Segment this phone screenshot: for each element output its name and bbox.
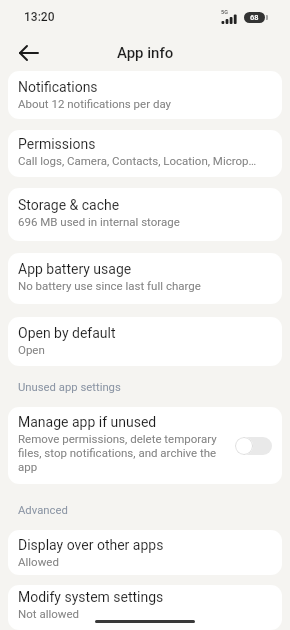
staticText: Not allowed — [18, 607, 80, 620]
staticText: No battery use since last full charge — [18, 279, 201, 292]
staticText: App info — [117, 44, 174, 62]
staticText: Advanced — [18, 504, 68, 517]
staticText: Permissions — [18, 136, 96, 152]
staticText: Storage & cache — [18, 197, 120, 213]
staticText: 68 — [250, 13, 259, 22]
staticText: 696 MB used in internal storage — [18, 215, 180, 228]
button[interactable]: Permissions — [8, 130, 282, 177]
button[interactable] — [12, 36, 46, 70]
button[interactable]: Notifications — [8, 71, 282, 119]
button[interactable]: Manage app if unused — [8, 407, 282, 484]
staticText: Open by default — [18, 325, 116, 341]
staticText: Call logs, Camera, Contacts, Location, M… — [18, 154, 257, 167]
staticText: Allowed — [18, 555, 59, 568]
button[interactable]: App battery usage — [8, 253, 282, 304]
staticText: 13:20 — [24, 10, 55, 24]
staticText: Notifications — [18, 79, 98, 95]
staticText: Remove permissions, delete temporary fil… — [18, 432, 227, 474]
staticText: Manage app if unused — [18, 414, 157, 430]
button[interactable] — [235, 437, 272, 455]
staticText: Modify system settings — [18, 589, 164, 605]
button[interactable]: Display over other apps — [8, 530, 282, 575]
staticText: 5G — [221, 9, 228, 15]
staticText: App battery usage — [18, 261, 132, 277]
button[interactable]: Open by default — [8, 317, 282, 366]
staticText: Display over other apps — [18, 537, 164, 553]
button[interactable]: Storage & cache — [8, 188, 282, 241]
button[interactable]: Modify system settings — [8, 585, 282, 630]
staticText: Unused app settings — [18, 381, 121, 394]
staticText: Open — [18, 343, 45, 356]
staticText: About 12 notifications per day — [18, 97, 172, 110]
